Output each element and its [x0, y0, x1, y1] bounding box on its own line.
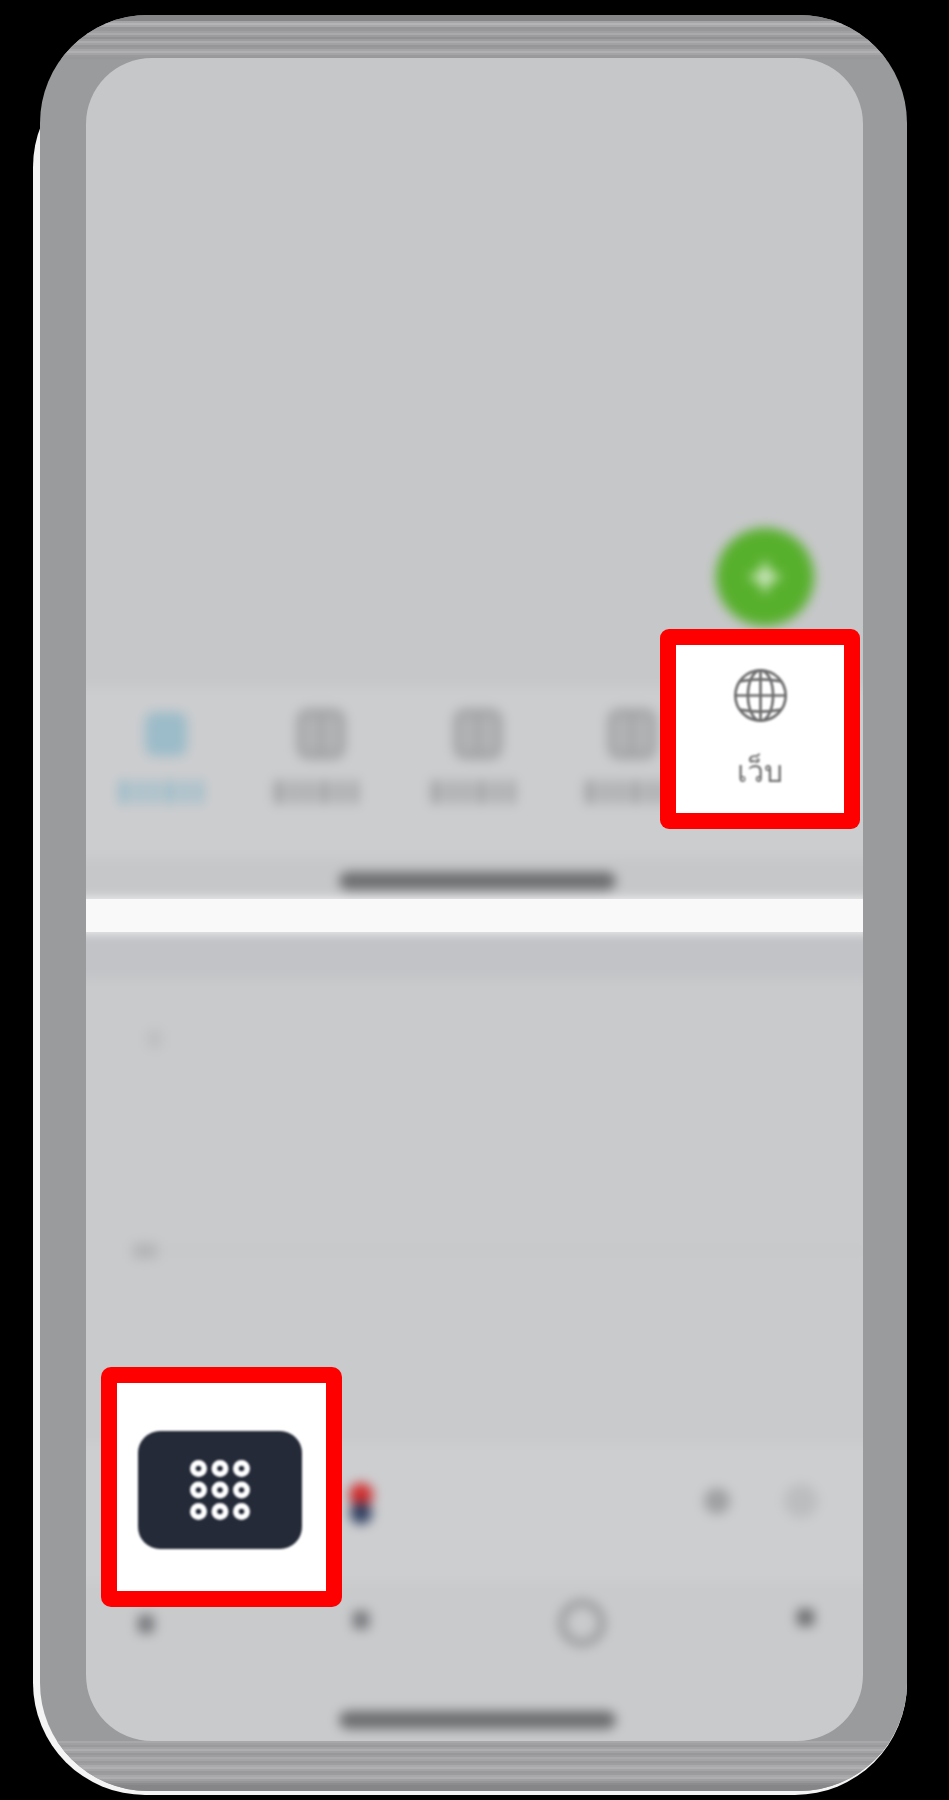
other: Dialpad [138, 1431, 302, 1549]
button[interactable]: เว็บ [676, 645, 844, 813]
staticText: เว็บ [737, 748, 784, 796]
button[interactable]: Dialpad [117, 1383, 326, 1591]
